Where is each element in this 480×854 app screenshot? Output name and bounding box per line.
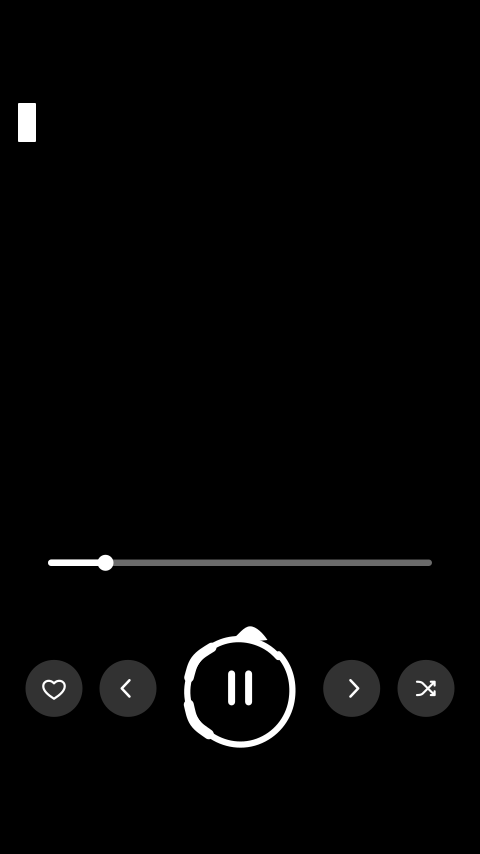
button[interactable]: Next xyxy=(323,660,380,717)
button[interactable]: Like xyxy=(25,660,82,717)
button[interactable]: Pause xyxy=(180,623,298,749)
button[interactable]: Shuffle xyxy=(397,660,454,717)
button[interactable]: Previous xyxy=(99,660,156,717)
